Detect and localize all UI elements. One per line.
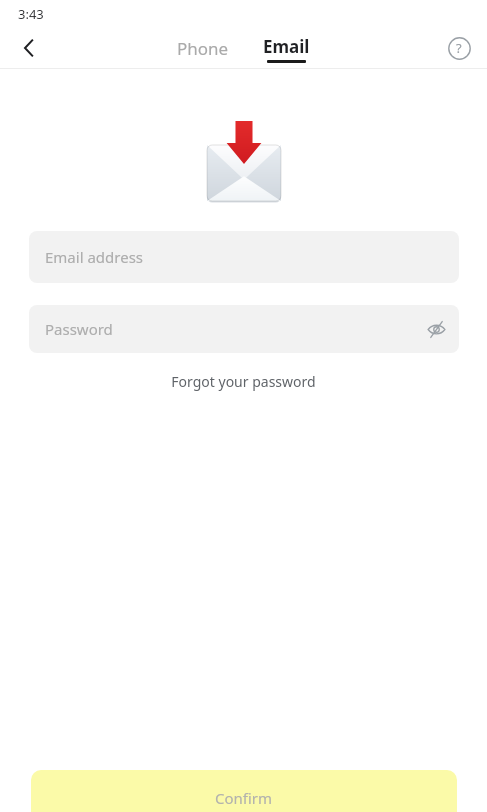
button[interactable]: Email address bbox=[29, 231, 459, 283]
button[interactable]: Password bbox=[29, 305, 459, 353]
staticText: ? bbox=[456, 39, 462, 57]
button[interactable]: Show password bbox=[413, 305, 459, 353]
button[interactable]: Confirm bbox=[31, 770, 457, 812]
button[interactable]: Back bbox=[0, 28, 58, 68]
staticText: Confirm bbox=[215, 788, 273, 808]
staticText: Forgot your password bbox=[171, 372, 316, 391]
staticText: Password bbox=[45, 319, 113, 339]
button[interactable]: Email bbox=[253, 28, 320, 68]
staticText: 3:43 bbox=[18, 5, 44, 23]
button[interactable]: Help bbox=[431, 28, 487, 68]
staticText: Phone bbox=[177, 37, 229, 60]
button[interactable]: Forgot your password bbox=[159, 368, 328, 395]
staticText: Email address bbox=[45, 247, 144, 267]
button[interactable]: Phone bbox=[167, 28, 239, 68]
staticText: Email bbox=[263, 35, 310, 58]
